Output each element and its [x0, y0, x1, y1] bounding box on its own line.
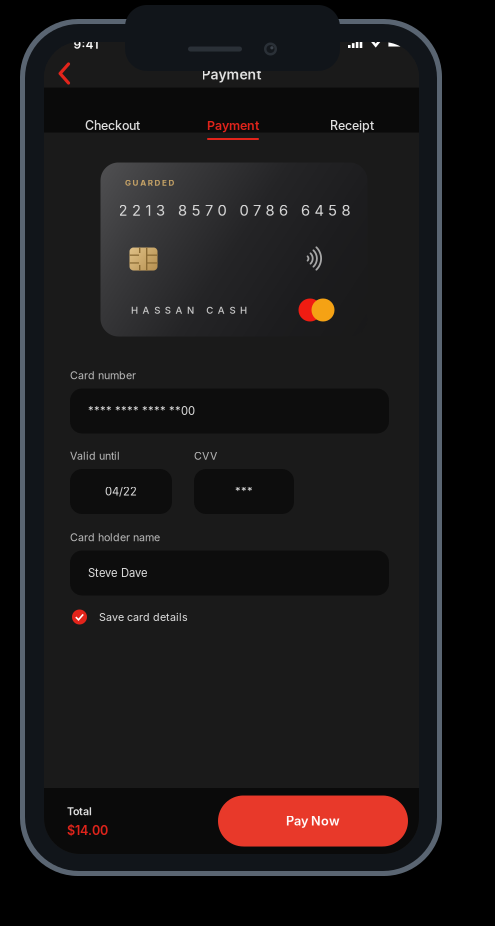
- button[interactable]: Payment: [207, 87, 259, 132]
- staticText: GUARDED: [125, 178, 175, 188]
- staticText: Card number: [70, 369, 136, 382]
- staticText: ***: [235, 485, 253, 498]
- staticText: Valid until: [70, 449, 120, 462]
- staticText: Total: [67, 805, 92, 818]
- staticText: $14.00: [67, 823, 108, 838]
- staticText: Payment: [207, 118, 259, 133]
- button[interactable]: Save card details: [72, 606, 188, 628]
- button[interactable]: Pay Now: [218, 795, 408, 846]
- button[interactable]: Back: [50, 60, 78, 87]
- button[interactable]: Checkout: [85, 87, 140, 132]
- staticText: 2213 8570 0786 6458: [118, 201, 350, 219]
- staticText: Receipt: [330, 118, 374, 133]
- staticText: Save card details: [99, 610, 188, 623]
- staticText: Checkout: [85, 118, 140, 133]
- staticText: CVV: [194, 449, 217, 462]
- staticText: Payment: [201, 66, 261, 83]
- staticText: **** **** **** **00: [88, 404, 195, 418]
- staticText: Pay Now: [286, 813, 340, 829]
- staticText: 9:41: [73, 37, 98, 51]
- button[interactable]: Receipt: [326, 87, 378, 132]
- staticText: Steve Dave: [88, 566, 148, 580]
- staticText: Card holder name: [70, 531, 160, 544]
- staticText: HASSAN CASH: [131, 304, 247, 316]
- staticText: 04/22: [105, 485, 137, 498]
